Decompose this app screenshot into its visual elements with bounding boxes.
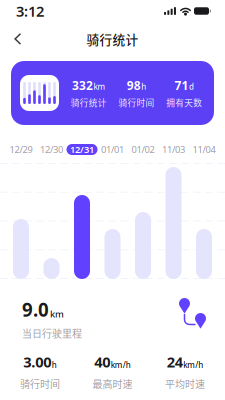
staticText: km — [93, 81, 105, 92]
staticText: 骑行统计 — [86, 30, 138, 48]
staticText: d — [189, 81, 194, 92]
button[interactable]: Back — [0, 26, 36, 52]
staticText: 12/31 — [70, 143, 94, 156]
button[interactable]: 01/01 — [97, 142, 128, 157]
staticText: 11/04 — [192, 143, 215, 156]
staticText: 24 — [167, 352, 183, 371]
staticText: h — [141, 81, 146, 92]
staticText: 骑行统计 — [71, 96, 107, 109]
staticText: 12/30 — [40, 143, 63, 156]
staticText: km — [50, 308, 64, 320]
staticText: 3.00 — [23, 352, 51, 371]
button[interactable]: 11/04 — [189, 142, 219, 157]
staticText: 平均时速 — [165, 376, 205, 391]
staticText: 71 — [174, 77, 188, 93]
staticText: 11/03 — [162, 143, 185, 156]
staticText: km/h — [183, 360, 203, 370]
button[interactable]: 12/31 — [67, 142, 97, 157]
staticText: 01/01 — [101, 143, 124, 156]
staticText: h — [52, 360, 57, 370]
staticText: 最高时速 — [92, 376, 132, 391]
staticText: 40 — [94, 352, 110, 371]
staticText: 骑行时间 — [20, 376, 60, 391]
staticText: 拥有天数 — [166, 96, 202, 109]
button[interactable]: 01/02 — [128, 142, 158, 157]
staticText: 9.0 — [22, 297, 49, 322]
staticText: 骑行时间 — [118, 96, 154, 109]
staticText: 12/29 — [9, 143, 32, 156]
staticText: 3:12 — [16, 1, 44, 21]
button[interactable]: 12/29 — [6, 142, 36, 157]
staticText: 当日行驶里程 — [22, 326, 82, 340]
staticText: 01/02 — [131, 143, 154, 156]
staticText: km/h — [111, 360, 131, 370]
staticText: 332 — [72, 77, 93, 93]
staticText: 98 — [127, 77, 141, 93]
button[interactable]: 11/03 — [158, 142, 189, 157]
button[interactable]: 12/30 — [36, 142, 67, 157]
